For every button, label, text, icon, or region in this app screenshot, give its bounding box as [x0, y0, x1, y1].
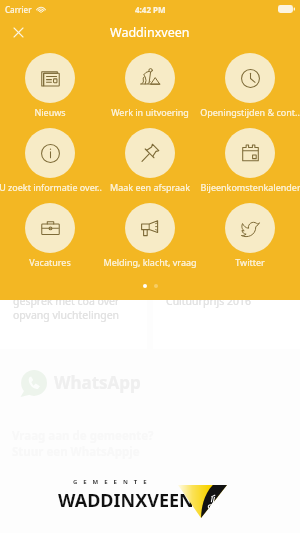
staticText: Melding, klacht, vraag [103, 256, 197, 268]
staticText: Cultuurprijs 2016 [166, 294, 251, 308]
staticText: Nieuws [34, 106, 66, 118]
button[interactable]: Maak een afspraak [100, 120, 200, 195]
staticText: 4:42 PM [135, 4, 166, 15]
staticText: G E M E E N T E [73, 478, 149, 486]
staticText: gesprek met coa over opvang vluchtelinge… [13, 294, 120, 322]
button[interactable]: Werk in uitvoering [100, 45, 200, 120]
staticText: Carrier [5, 4, 32, 15]
staticText: Openingstijden & cont.. [200, 106, 300, 118]
button[interactable]: U zoekt informatie over.. [0, 120, 100, 195]
button[interactable]: Openingstijden & cont.. [200, 45, 300, 120]
staticText: Werk in uitvoering [111, 106, 189, 118]
staticText: Twitter [235, 256, 265, 268]
button[interactable]: Bijeenkomstenkalender [200, 120, 300, 195]
staticText: Bijeenkomstenkalender [200, 181, 300, 193]
staticText: Vacatures [29, 256, 71, 268]
button[interactable]: Twitter [200, 195, 300, 270]
button[interactable]: Melding, klacht, vraag [100, 195, 200, 270]
staticText: Maak een afspraak [110, 181, 190, 193]
staticText: U zoekt informatie over.. [0, 181, 102, 193]
staticText: Waddinxveen [110, 24, 190, 41]
staticText: WADDINXVEEN [58, 488, 194, 513]
button[interactable]: Close [8, 22, 28, 42]
button[interactable]: Vacatures [0, 195, 100, 270]
button[interactable]: Nieuws [0, 45, 100, 120]
staticText: WhatsApp [54, 371, 141, 394]
